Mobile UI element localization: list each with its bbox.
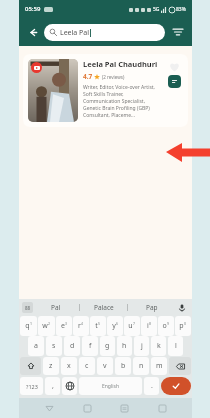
button[interactable]: l [168, 336, 183, 356]
staticText: . [151, 381, 153, 391]
staticText: o [162, 321, 167, 331]
button[interactable]: Play video [31, 62, 42, 73]
staticText: l [175, 341, 177, 351]
button[interactable]: s [46, 336, 62, 356]
staticText: 05:59 [25, 5, 41, 13]
staticText: e [61, 321, 65, 331]
staticText: 88 [25, 305, 31, 311]
staticText: Pap [146, 303, 158, 312]
button[interactable]: ?123 [20, 377, 43, 395]
button[interactable]: a [28, 336, 44, 356]
staticText: d [70, 341, 75, 351]
staticText: p [179, 321, 184, 331]
staticText: Leela Pal Chaudhuri [83, 59, 158, 69]
staticText: 7 [133, 321, 136, 326]
button[interactable]: x [61, 357, 77, 375]
staticText: m [156, 361, 163, 371]
button[interactable]: Message [168, 75, 181, 88]
staticText: 83% [176, 6, 186, 13]
staticText: Writer, Editor, Voice-over Artist, Soft … [83, 84, 162, 119]
button[interactable]: r [73, 316, 89, 336]
button[interactable]: Favorite [167, 59, 181, 73]
button[interactable]: Leela Pal [44, 24, 165, 41]
staticText: 2 [48, 321, 51, 326]
button[interactable]: Search [161, 377, 191, 395]
staticText: h [122, 341, 127, 351]
staticText: a [34, 341, 38, 351]
staticText: , [52, 381, 54, 391]
staticText: n [139, 361, 144, 371]
staticText: 6 [116, 321, 119, 326]
staticText: w [42, 321, 48, 331]
staticText: i [147, 321, 149, 331]
button[interactable]: v [97, 357, 113, 375]
button[interactable]: t [90, 316, 106, 336]
staticText: 5 [98, 321, 101, 326]
staticText: v [103, 361, 107, 371]
button[interactable]: Voice input [175, 299, 189, 316]
button[interactable]: e [56, 316, 72, 336]
button[interactable]: n [133, 357, 149, 375]
button[interactable]: g [100, 336, 115, 356]
button[interactable]: f [82, 336, 98, 356]
button[interactable]: o [158, 316, 174, 336]
staticText: English [102, 383, 120, 390]
staticText: r [78, 321, 81, 331]
button[interactable]: u [124, 316, 140, 336]
button[interactable]: Pal [33, 299, 79, 316]
button[interactable]: y [107, 316, 123, 336]
button[interactable]: k [151, 336, 166, 356]
button[interactable]: c [79, 357, 95, 375]
button[interactable]: m [151, 357, 167, 375]
staticText: 8 [149, 321, 152, 326]
button[interactable]: d [64, 336, 80, 356]
staticText: y [112, 321, 116, 331]
button[interactable]: , [45, 377, 60, 395]
button[interactable]: Emoji [22, 302, 33, 313]
button[interactable]: z [43, 357, 59, 375]
staticText: c [85, 361, 89, 371]
staticText: 1 [30, 321, 33, 326]
staticText: s [52, 341, 56, 351]
button[interactable]: Back [24, 23, 42, 41]
staticText: 4 [81, 321, 84, 326]
button[interactable]: Home [79, 400, 95, 416]
button[interactable]: Backspace [169, 357, 191, 375]
button[interactable]: Pap [128, 299, 175, 316]
button[interactable]: i [141, 316, 157, 336]
staticText: b [121, 361, 126, 371]
button[interactable]: Back [41, 400, 57, 416]
staticText: z [49, 361, 53, 371]
button[interactable]: Palace [80, 299, 127, 316]
staticText: u [128, 321, 133, 331]
button[interactable]: j [134, 336, 149, 356]
staticText: 0 [184, 321, 187, 326]
button[interactable]: Play video [23, 54, 188, 127]
staticText: f [89, 341, 92, 351]
staticText: 4.7 [83, 72, 93, 81]
button[interactable]: Change language [62, 377, 77, 395]
button[interactable]: . [144, 377, 159, 395]
staticText: (2 reviews) [102, 74, 125, 80]
staticText: ?123 [26, 383, 38, 390]
staticText: Leela Pal [60, 28, 90, 38]
button[interactable]: Filter [169, 23, 187, 41]
staticText: 9 [167, 321, 170, 326]
button[interactable]: b [115, 357, 131, 375]
staticText: t [95, 321, 98, 331]
button[interactable]: h [117, 336, 132, 356]
staticText: Palace [94, 303, 114, 312]
staticText: g [105, 341, 110, 351]
button[interactable]: Keyboard [154, 400, 170, 416]
staticText: 3 [65, 321, 68, 326]
staticText: x [67, 361, 71, 371]
button[interactable]: q [20, 316, 37, 336]
button[interactable]: w [38, 316, 55, 336]
staticText: 5G [153, 6, 160, 13]
button[interactable]: Shift [20, 357, 41, 375]
button[interactable]: Recents [116, 400, 132, 416]
staticText: Pal [51, 303, 61, 312]
staticText: k [157, 341, 161, 351]
button[interactable]: p [175, 316, 191, 336]
button[interactable]: English [79, 377, 142, 395]
